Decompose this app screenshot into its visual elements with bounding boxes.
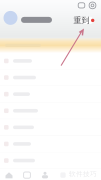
button[interactable]: [0, 103, 101, 119]
button[interactable]: [0, 119, 101, 136]
button[interactable]: Messages: [76, 0, 87, 11]
button[interactable]: Profile: [41, 171, 49, 179]
button[interactable]: [0, 136, 101, 152]
button[interactable]: [0, 152, 101, 169]
button[interactable]: [0, 69, 101, 86]
button[interactable]: [0, 86, 101, 103]
button[interactable]: 重到: [75, 17, 93, 24]
button[interactable]: [0, 53, 101, 69]
button[interactable]: Settings: [87, 0, 98, 11]
button[interactable]: [3, 11, 52, 25]
button[interactable]: Home: [5, 171, 13, 179]
staticText: 软件技巧: [69, 170, 97, 178]
staticText: 重到: [74, 15, 90, 25]
button[interactable]: More: [60, 172, 66, 178]
button[interactable]: Discover: [24, 172, 30, 178]
